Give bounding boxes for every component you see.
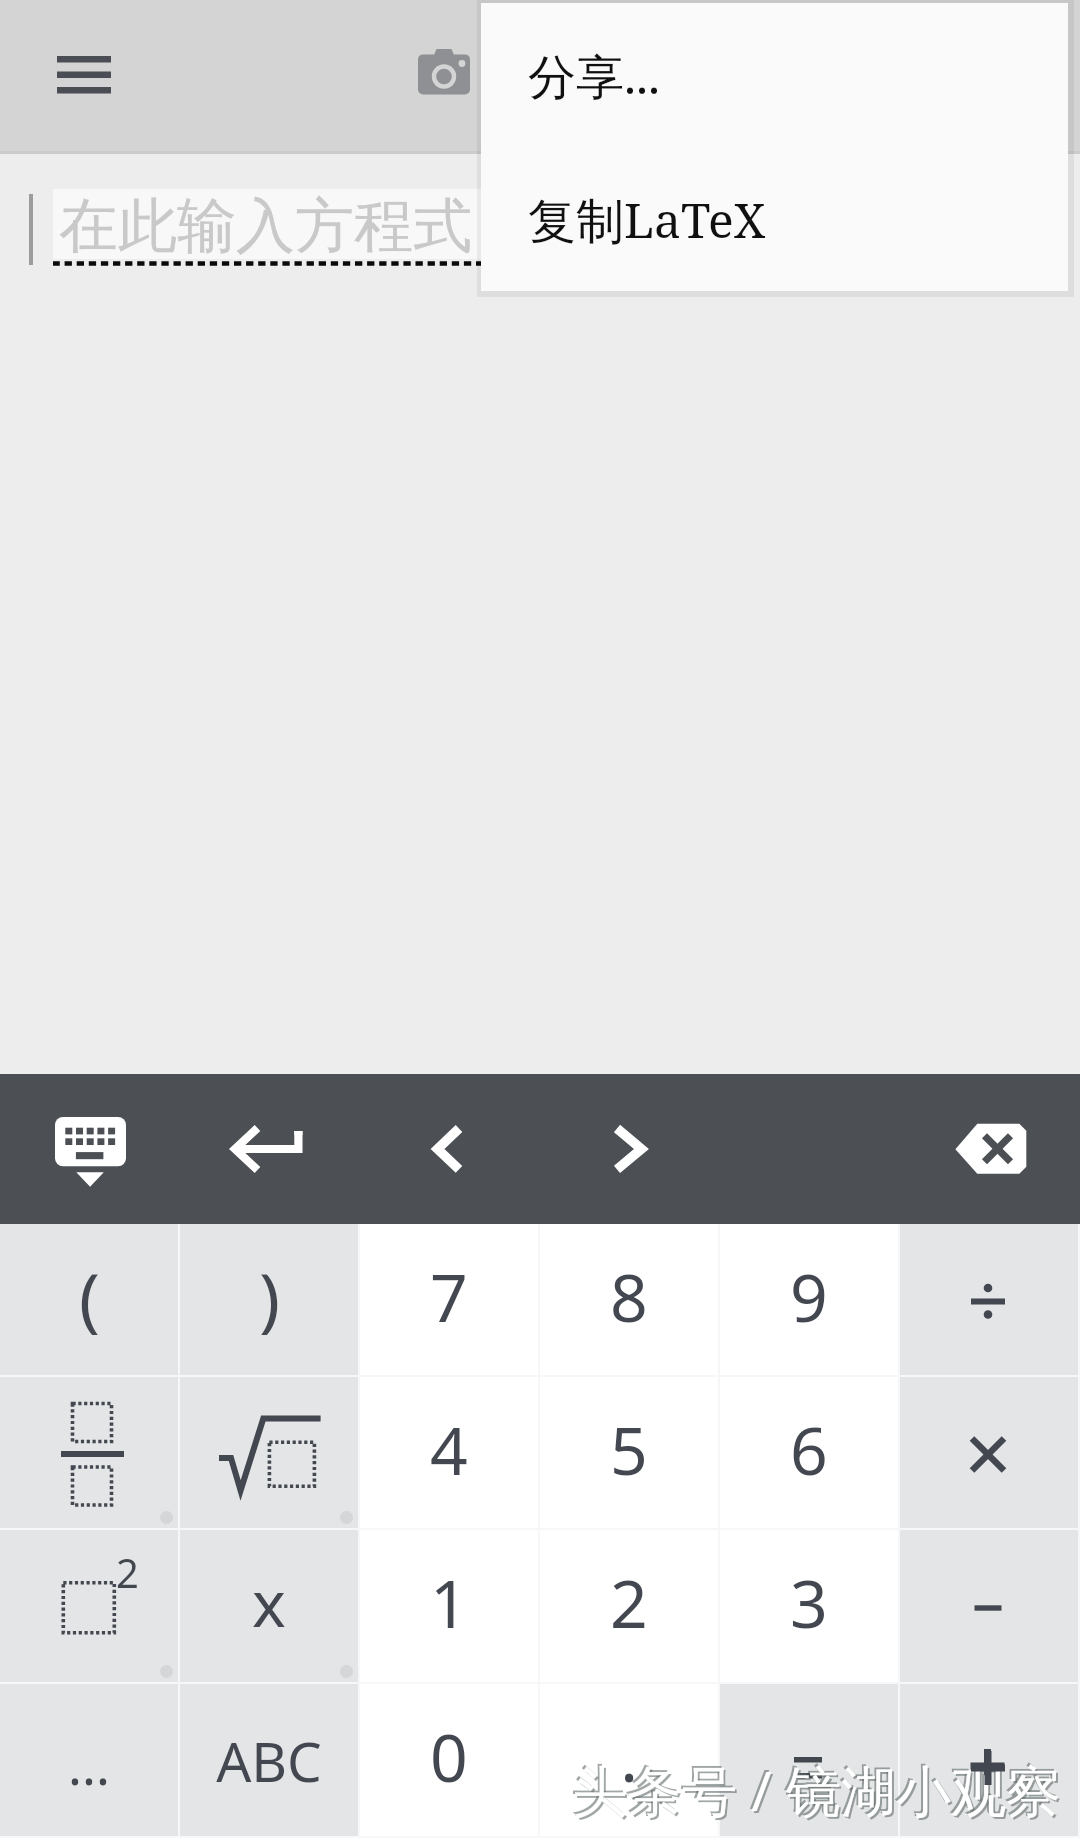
button[interactable]: ) — [180, 1224, 358, 1375]
staticText: 复制LaTeX — [528, 187, 766, 253]
button[interactable]: 9 — [720, 1224, 898, 1375]
staticText: x — [252, 1559, 286, 1646]
button[interactable]: 8 — [540, 1224, 718, 1375]
staticText: 1 — [430, 1557, 468, 1647]
button[interactable]: 7 — [360, 1224, 538, 1375]
button[interactable]: ( — [0, 1224, 178, 1375]
button[interactable]: Power — [0, 1530, 178, 1682]
staticText: ) — [259, 1249, 280, 1344]
staticText: 5 — [610, 1404, 648, 1494]
staticText: ABC — [216, 1723, 322, 1798]
button[interactable]: 0 — [360, 1684, 538, 1836]
button[interactable]: Camera — [369, 8, 519, 142]
button[interactable]: Enter — [200, 1084, 350, 1218]
staticText: . — [620, 1711, 638, 1801]
button[interactable]: 2 — [540, 1530, 718, 1682]
staticText: 分享... — [528, 43, 661, 109]
staticText: 头条号 / 镜湖小观察 — [574, 1754, 1064, 1829]
button[interactable]: Hide keyboard — [20, 1084, 170, 1218]
staticText: 头条号 / 镜湖小观察 — [572, 1752, 1062, 1827]
button[interactable]: Plus — [900, 1684, 1078, 1836]
button[interactable]: 5 — [540, 1377, 718, 1528]
staticText: 在此输入方程式 — [59, 189, 472, 263]
button[interactable]: 6 — [720, 1377, 898, 1528]
staticText: 0 — [430, 1711, 468, 1801]
staticText: 6 — [790, 1404, 828, 1494]
button[interactable]: 复制LaTeX — [481, 148, 1068, 291]
button[interactable]: x — [180, 1530, 358, 1682]
staticText: ( — [79, 1249, 100, 1344]
button[interactable]: Cursor right — [560, 1084, 710, 1218]
staticText: 2 — [116, 1545, 139, 1599]
button[interactable]: Square root — [180, 1377, 358, 1528]
staticText: 4 — [430, 1404, 468, 1494]
button[interactable]: Fraction — [0, 1377, 178, 1528]
staticText: 2 — [610, 1557, 648, 1647]
button[interactable]: Divide — [900, 1224, 1078, 1375]
button[interactable]: Multiply — [900, 1377, 1078, 1528]
staticText: 8 — [610, 1251, 648, 1341]
button[interactable]: 4 — [360, 1377, 538, 1528]
button[interactable]: Menu — [9, 8, 159, 142]
staticText: 9 — [790, 1251, 828, 1341]
button[interactable]: 分享... — [481, 3, 1068, 148]
staticText: 3 — [790, 1557, 828, 1647]
button[interactable]: Minus — [900, 1530, 1078, 1682]
button[interactable]: Equals — [720, 1684, 898, 1836]
button[interactable]: ... — [0, 1684, 178, 1836]
button[interactable]: . — [540, 1684, 718, 1836]
button[interactable]: Backspace — [910, 1084, 1060, 1218]
button[interactable]: Cursor left — [380, 1084, 530, 1218]
button[interactable]: 1 — [360, 1530, 538, 1682]
staticText: 头条号 / 镜湖小观察 — [570, 1750, 1060, 1825]
staticText: 7 — [430, 1251, 468, 1341]
staticText: ... — [68, 1729, 110, 1800]
button[interactable]: ABC — [180, 1684, 358, 1836]
button[interactable]: 3 — [720, 1530, 898, 1682]
